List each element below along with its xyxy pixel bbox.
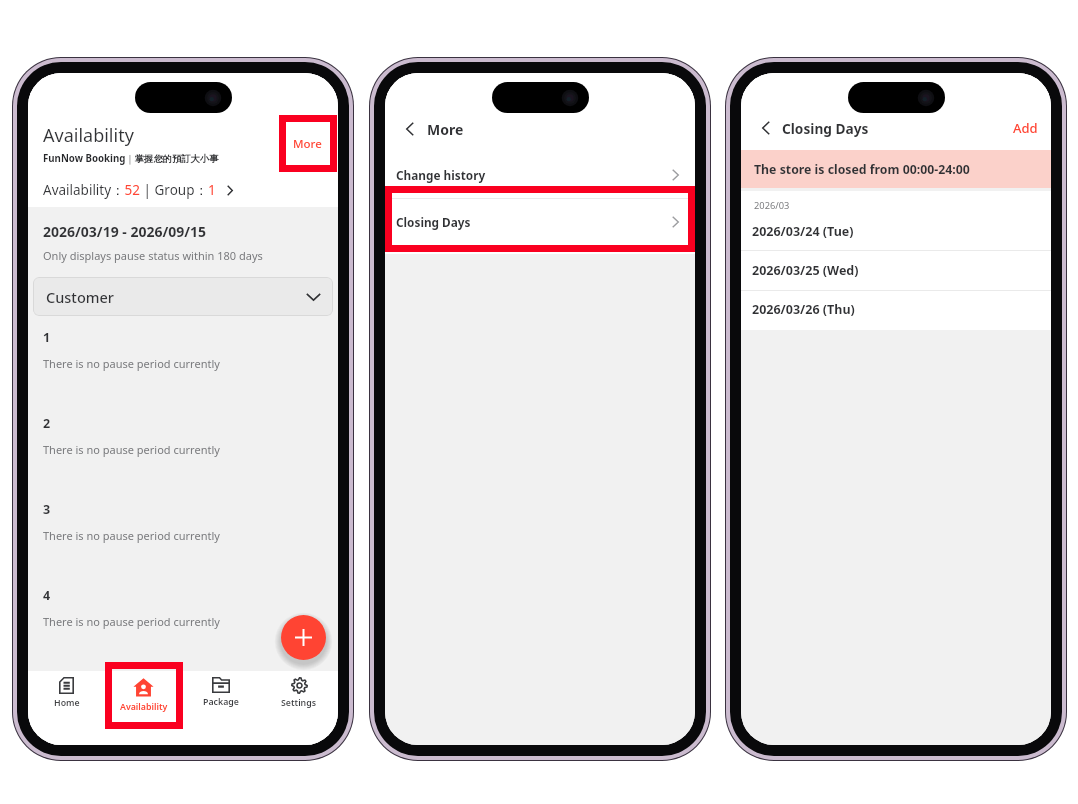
button[interactable]: Availability：52 | Group：1 [28, 176, 338, 204]
staticText: FunNow Booking｜掌握您的預訂大小事 [43, 152, 219, 165]
staticText: 2026/03 [754, 199, 790, 212]
staticText: Settings [281, 697, 317, 709]
button[interactable]: Settings [260, 675, 338, 711]
staticText: Home [54, 697, 80, 709]
staticText: Closing Days [396, 214, 672, 230]
button[interactable]: More [284, 129, 331, 159]
button[interactable]: Customer [33, 277, 333, 316]
staticText: There is no pause period currently [43, 614, 220, 629]
staticText: 2026/03/26 (Thu) [752, 301, 855, 318]
staticText: Availability：52 | Group：1 [43, 181, 216, 199]
button[interactable]: Availability [105, 675, 182, 715]
button[interactable]: Package [182, 675, 260, 710]
staticText: Closing Days [782, 119, 1010, 138]
button[interactable]: 2026/03/24 (Tue) [741, 212, 1051, 250]
staticText: Availability [120, 701, 168, 713]
staticText: 2 [43, 415, 51, 432]
staticText: 2026/03/24 (Tue) [752, 223, 854, 240]
button[interactable]: 2026/03/26 (Thu) [741, 290, 1051, 328]
staticText: There is no pause period currently [43, 442, 220, 457]
staticText: 2026/03/25 (Wed) [752, 262, 859, 279]
button[interactable]: Home [28, 675, 105, 711]
staticText: More [293, 136, 322, 152]
staticText: Add [1013, 119, 1038, 137]
staticText: 3 [43, 501, 51, 518]
staticText: 4 [43, 587, 51, 604]
staticText: There is no pause period currently [43, 356, 220, 371]
staticText: The store is closed from 00:00-24:00 [754, 161, 970, 178]
button[interactable]: Back [753, 115, 779, 141]
button[interactable]: Back [397, 116, 423, 142]
button[interactable]: Add [281, 615, 326, 660]
staticText: Customer [46, 287, 114, 307]
button[interactable]: 2026/03/25 (Wed) [741, 251, 1051, 289]
staticText: Change history [396, 167, 672, 183]
staticText: Availability [43, 123, 134, 148]
staticText: Only displays pause status within 180 da… [43, 248, 263, 263]
button[interactable]: Add [1010, 114, 1041, 142]
button[interactable]: Change history [385, 152, 695, 198]
staticText: More [427, 120, 464, 139]
staticText: Package [203, 696, 239, 708]
staticText: 1 [43, 329, 51, 346]
button[interactable]: Closing Days [385, 199, 695, 245]
staticText: 2026/03/19 - 2026/09/15 [43, 222, 207, 241]
staticText: There is no pause period currently [43, 528, 220, 543]
